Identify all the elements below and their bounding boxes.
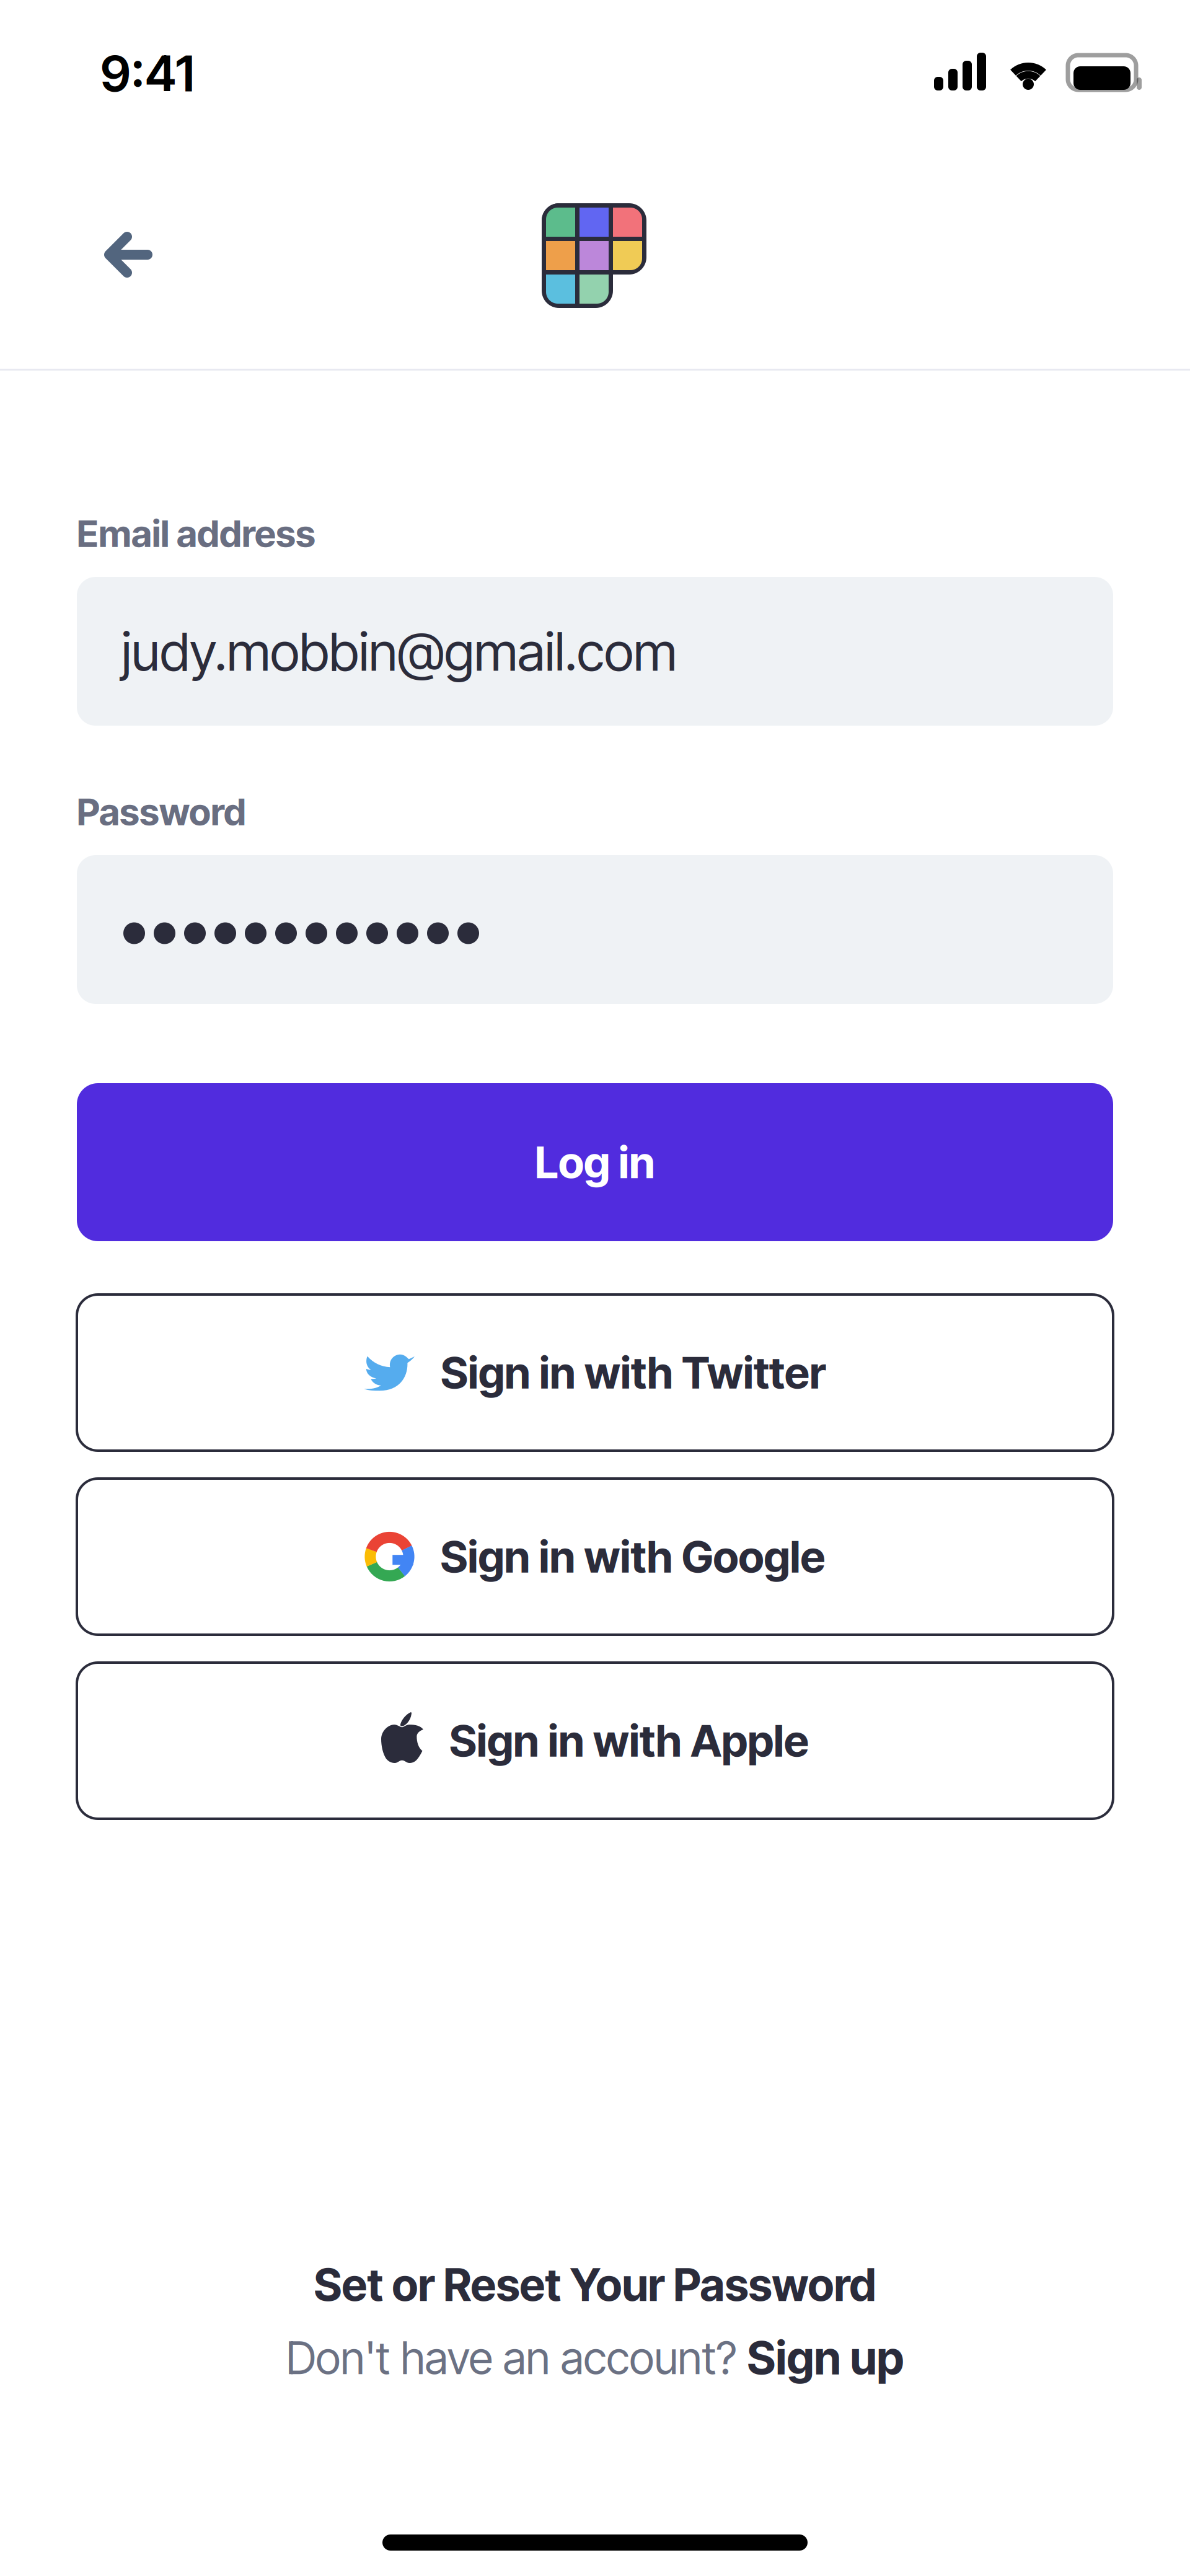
button[interactable]: Don't have an account? [0, 2330, 1190, 2386]
button[interactable]: Back [84, 212, 172, 297]
staticText: Password [77, 789, 246, 834]
staticText: Don't have an account? [286, 2331, 747, 2385]
button[interactable]: Log in [77, 1083, 1113, 1241]
staticText: judy.mobbin@gmail.com [121, 619, 677, 683]
button[interactable]: Sign in with Google [77, 1479, 1113, 1635]
staticText: Sign in with Twitter [441, 1346, 826, 1399]
staticText: Set or Reset Your Password [314, 2258, 876, 2312]
staticText: Email address [77, 511, 315, 556]
button[interactable]: Set or Reset Your Password [0, 2257, 1190, 2313]
button[interactable]: Sign in with Apple [77, 1663, 1113, 1819]
staticText: Log in [535, 1136, 655, 1189]
staticText: Sign in with Google [440, 1530, 825, 1583]
staticText: 9:41 [100, 43, 195, 103]
staticText: Sign in with Apple [449, 1714, 809, 1767]
staticText: Sign up [747, 2330, 904, 2385]
button[interactable]: Sign in with Twitter [77, 1295, 1113, 1451]
